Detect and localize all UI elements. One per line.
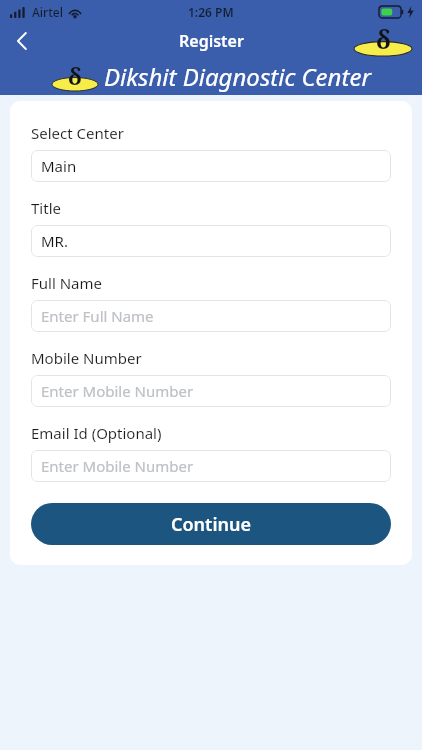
staticText: Enter Mobile Number <box>41 456 194 476</box>
staticText: Title <box>31 198 61 218</box>
staticText: Mobile Number <box>31 348 142 368</box>
button[interactable]: Enter Full Name <box>31 300 391 332</box>
staticText: Airtel <box>32 4 63 20</box>
button[interactable]: Main <box>31 150 391 182</box>
staticText: δ <box>68 60 82 88</box>
staticText: Dikshit Diagnostic Center <box>104 60 371 93</box>
button[interactable]: Enter Mobile Number <box>31 375 391 407</box>
staticText: Select Center <box>31 123 124 143</box>
staticText: Enter Full Name <box>41 306 154 326</box>
button[interactable]: Continue <box>31 503 391 545</box>
button[interactable]: Back <box>0 24 44 58</box>
staticText: Continue <box>171 512 251 537</box>
staticText: Main <box>41 156 77 176</box>
staticText: MR. <box>41 231 68 251</box>
staticText: Full Name <box>31 273 102 293</box>
button[interactable]: Enter Mobile Number <box>31 450 391 482</box>
staticText: δ <box>376 23 391 53</box>
staticText: 1:26 PM <box>188 4 234 20</box>
staticText: Register <box>179 30 244 52</box>
button[interactable]: MR. <box>31 225 391 257</box>
staticText: Email Id (Optional) <box>31 423 162 443</box>
staticText: Enter Mobile Number <box>41 381 194 401</box>
